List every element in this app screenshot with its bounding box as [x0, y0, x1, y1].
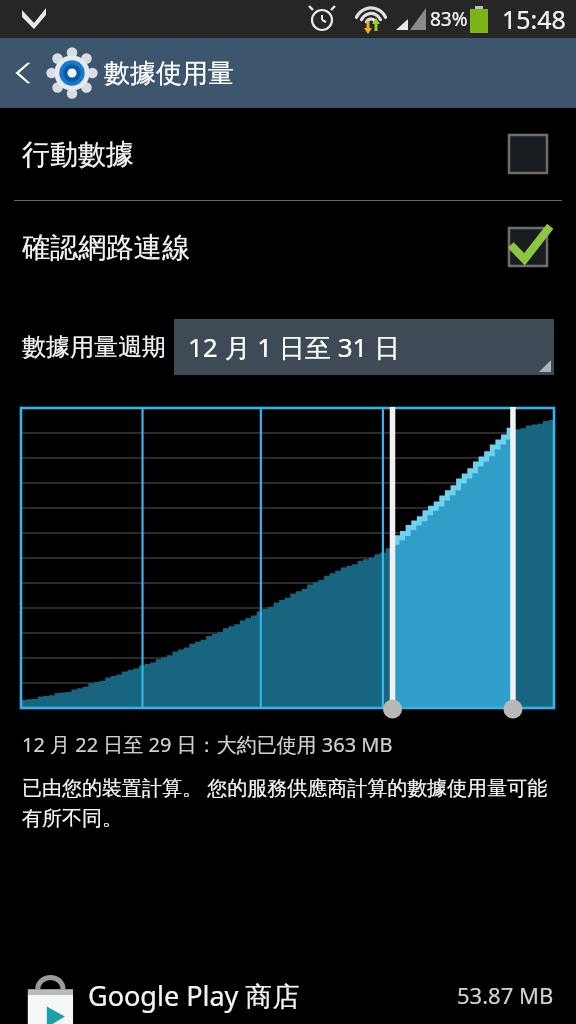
staticText: 已由您的裝置計算。 您的服務供應商計算的數據使用量可能有所不同。	[22, 774, 548, 831]
staticText: Google Play 商店	[88, 977, 300, 1014]
staticText: 83%	[430, 6, 468, 32]
staticText: 數據用量週期	[22, 332, 166, 362]
button[interactable]: Google Play 商店	[0, 966, 576, 1024]
staticText: 12 月 22 日至 29 日：大約已使用 363 MB	[22, 731, 393, 758]
staticText: 15:48	[502, 2, 566, 36]
staticText: 數據使用量	[104, 57, 234, 90]
button[interactable]: Back	[0, 38, 50, 108]
button[interactable]: 12 月 1 日至 31 日	[174, 319, 554, 375]
button[interactable]: 確認網路連線	[0, 201, 576, 293]
staticText: 確認網路連線	[22, 230, 190, 265]
button[interactable]: 行動數據	[0, 108, 576, 200]
staticText: 行動數據	[22, 137, 134, 172]
staticText: 12 月 1 日至 31 日	[188, 329, 401, 365]
staticText: 53.87 MB	[457, 980, 554, 1010]
